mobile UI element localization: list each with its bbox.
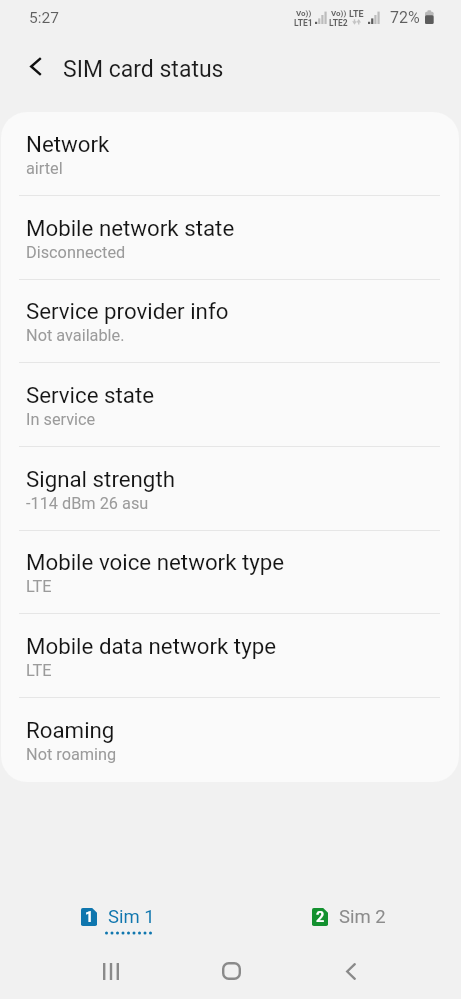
staticText: Roaming xyxy=(26,717,115,743)
staticText: Mobile voice network type xyxy=(26,549,285,575)
staticText: Network xyxy=(26,131,110,157)
staticText: Mobile network state xyxy=(26,215,235,241)
staticText: Mobile data network type xyxy=(26,633,277,659)
button[interactable]: Signal strength xyxy=(1,447,459,531)
button[interactable]: Navigate up xyxy=(10,36,62,96)
button[interactable]: Recent apps xyxy=(82,952,139,990)
button[interactable]: Home xyxy=(202,952,260,990)
staticText: Signal strength xyxy=(26,466,175,492)
button[interactable]: Network xyxy=(1,112,459,196)
button[interactable]: 1 xyxy=(56,888,180,952)
staticText: LTE2 xyxy=(329,18,348,28)
staticText: Not available. xyxy=(26,326,125,345)
button[interactable]: Mobile network state xyxy=(1,196,459,280)
staticText: LTE1 xyxy=(294,18,313,28)
staticText: 5:27 xyxy=(29,9,59,27)
staticText: Vo)) xyxy=(296,9,312,18)
staticText: LTE xyxy=(26,661,52,680)
staticText: LTE xyxy=(26,577,52,596)
staticText: Service provider info xyxy=(26,298,229,324)
staticText: Sim 1 xyxy=(108,906,155,928)
staticText: Service state xyxy=(26,382,155,408)
button[interactable]: Mobile voice network type xyxy=(1,531,459,614)
button[interactable]: Roaming xyxy=(1,698,459,782)
button[interactable]: Back xyxy=(322,952,379,990)
staticText: Vo)) xyxy=(331,9,347,18)
staticText: 1 xyxy=(85,909,94,926)
button[interactable]: Mobile data network type xyxy=(1,614,459,698)
staticText: 72% xyxy=(390,8,420,27)
staticText: In service xyxy=(26,410,96,429)
button[interactable]: 2 xyxy=(287,888,411,952)
staticText: Disconnected xyxy=(26,243,126,262)
staticText: SIM card status xyxy=(63,56,224,83)
staticText: -114 dBm 26 asu xyxy=(26,494,149,513)
staticText: Sim 2 xyxy=(339,906,386,928)
staticText: 2 xyxy=(316,909,325,926)
staticText: LTE xyxy=(349,9,364,20)
button[interactable]: Service state xyxy=(1,363,459,447)
staticText: Not roaming xyxy=(26,745,117,764)
staticText: airtel xyxy=(26,159,63,178)
button[interactable]: Service provider info xyxy=(1,280,459,363)
